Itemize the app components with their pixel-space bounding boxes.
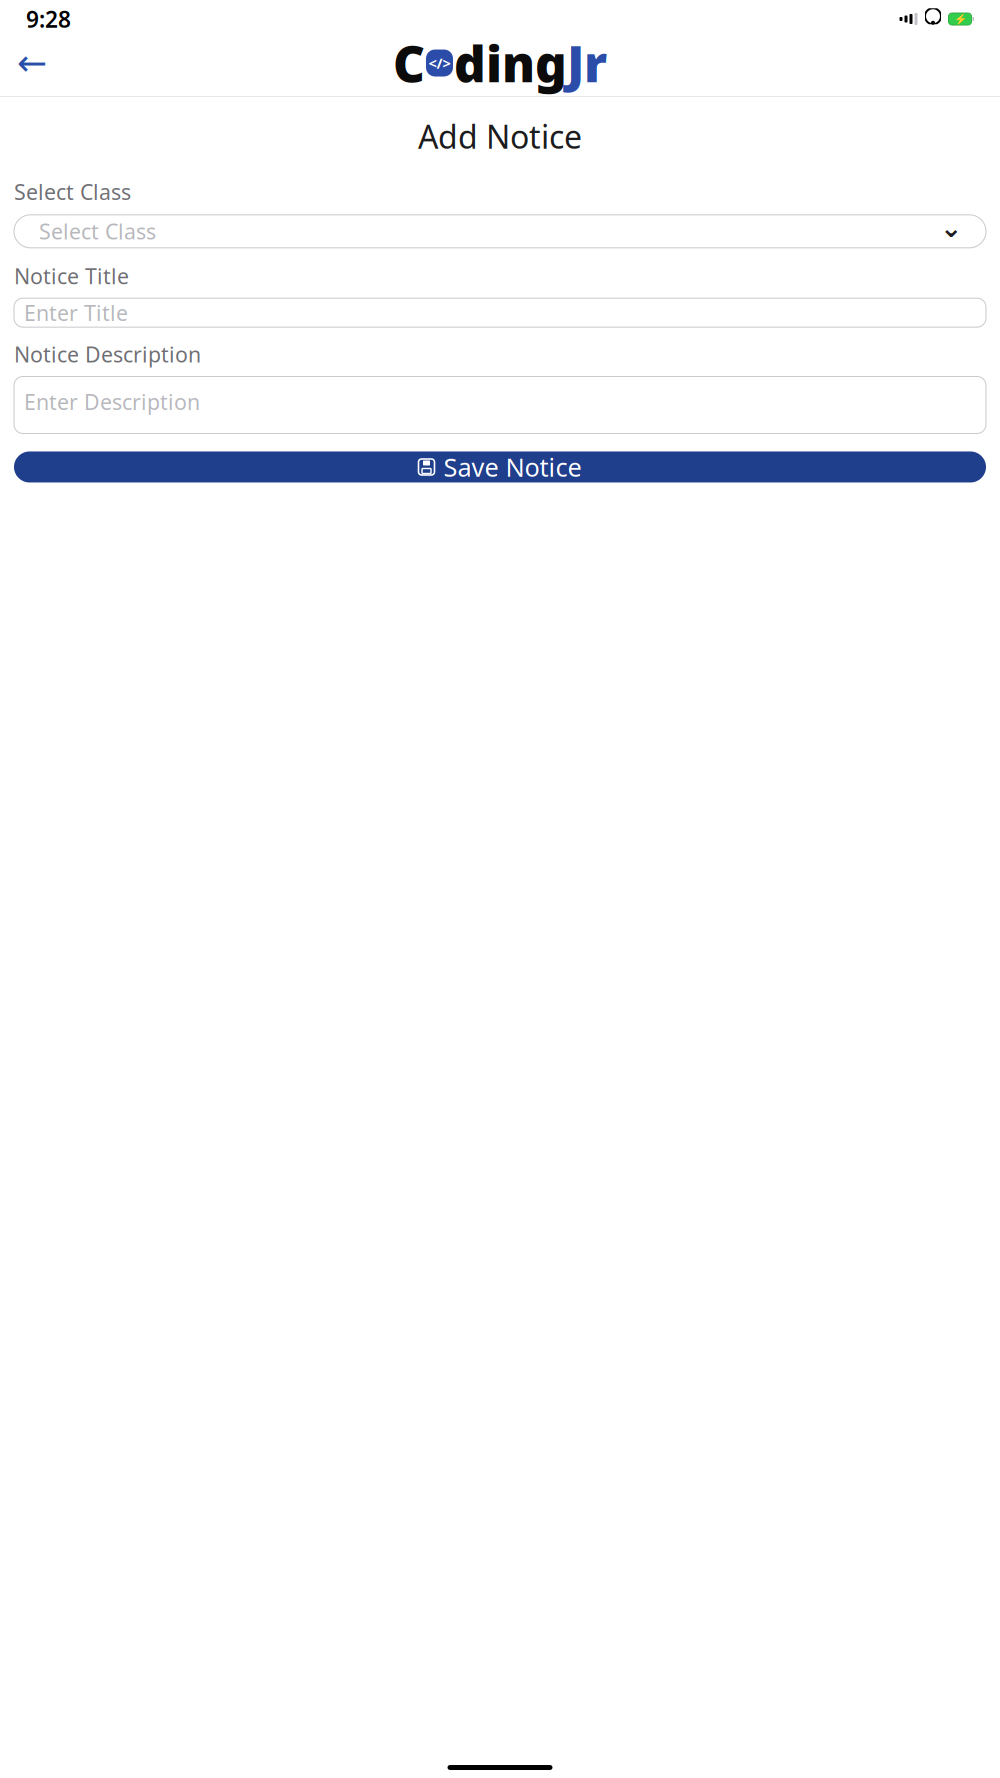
staticText: Notice Description	[14, 340, 201, 368]
staticText: C	[393, 30, 425, 96]
staticText: Jr	[567, 30, 607, 96]
staticText: Enter Title	[24, 298, 128, 327]
staticText: ⌄	[940, 213, 962, 243]
staticText: Notice Title	[14, 262, 129, 290]
staticText: Select Class	[39, 217, 156, 245]
staticText: ⚡	[953, 13, 966, 25]
staticText: Select Class	[14, 177, 131, 206]
staticText: </>	[428, 53, 450, 73]
button[interactable]: Select Class	[14, 215, 986, 248]
staticText: Enter Description	[24, 387, 200, 416]
button[interactable]: Enter Title	[14, 298, 986, 327]
button[interactable]: Enter Description	[14, 376, 986, 433]
staticText: Save Notice	[443, 450, 581, 484]
staticText: ←	[17, 43, 47, 83]
button[interactable]: Save Notice	[14, 451, 986, 482]
staticText: ding	[454, 30, 567, 96]
staticText: 9:28	[26, 4, 71, 34]
staticText: Add Notice	[418, 115, 582, 157]
button[interactable]: Back	[10, 41, 54, 85]
